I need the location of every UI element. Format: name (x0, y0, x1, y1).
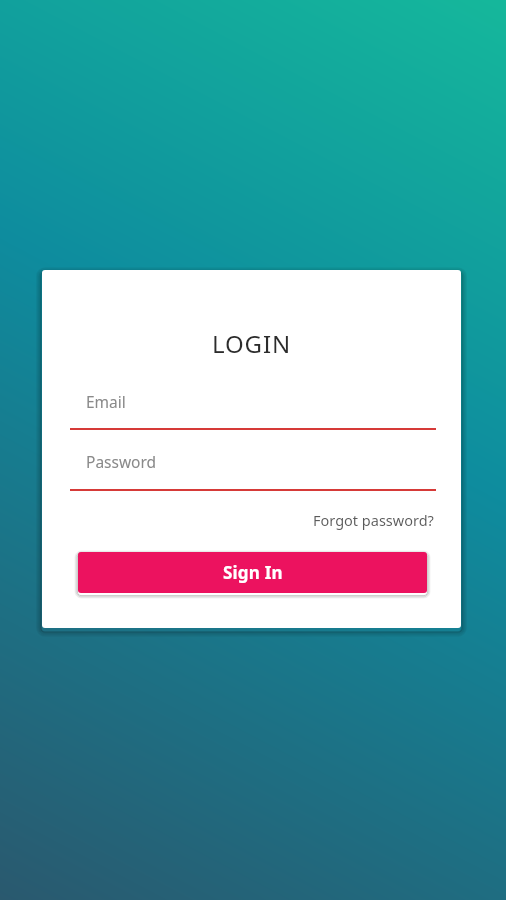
staticText: Email (86, 391, 126, 412)
button[interactable]: Password (70, 451, 436, 491)
button[interactable]: Forgot password? (313, 510, 461, 530)
staticText: Password (86, 451, 157, 472)
button[interactable]: Sign In (78, 552, 427, 593)
staticText: Sign In (223, 561, 283, 584)
staticText: LOGIN (42, 327, 461, 360)
staticText: Forgot password? (313, 510, 434, 530)
button[interactable]: Email (70, 391, 436, 431)
